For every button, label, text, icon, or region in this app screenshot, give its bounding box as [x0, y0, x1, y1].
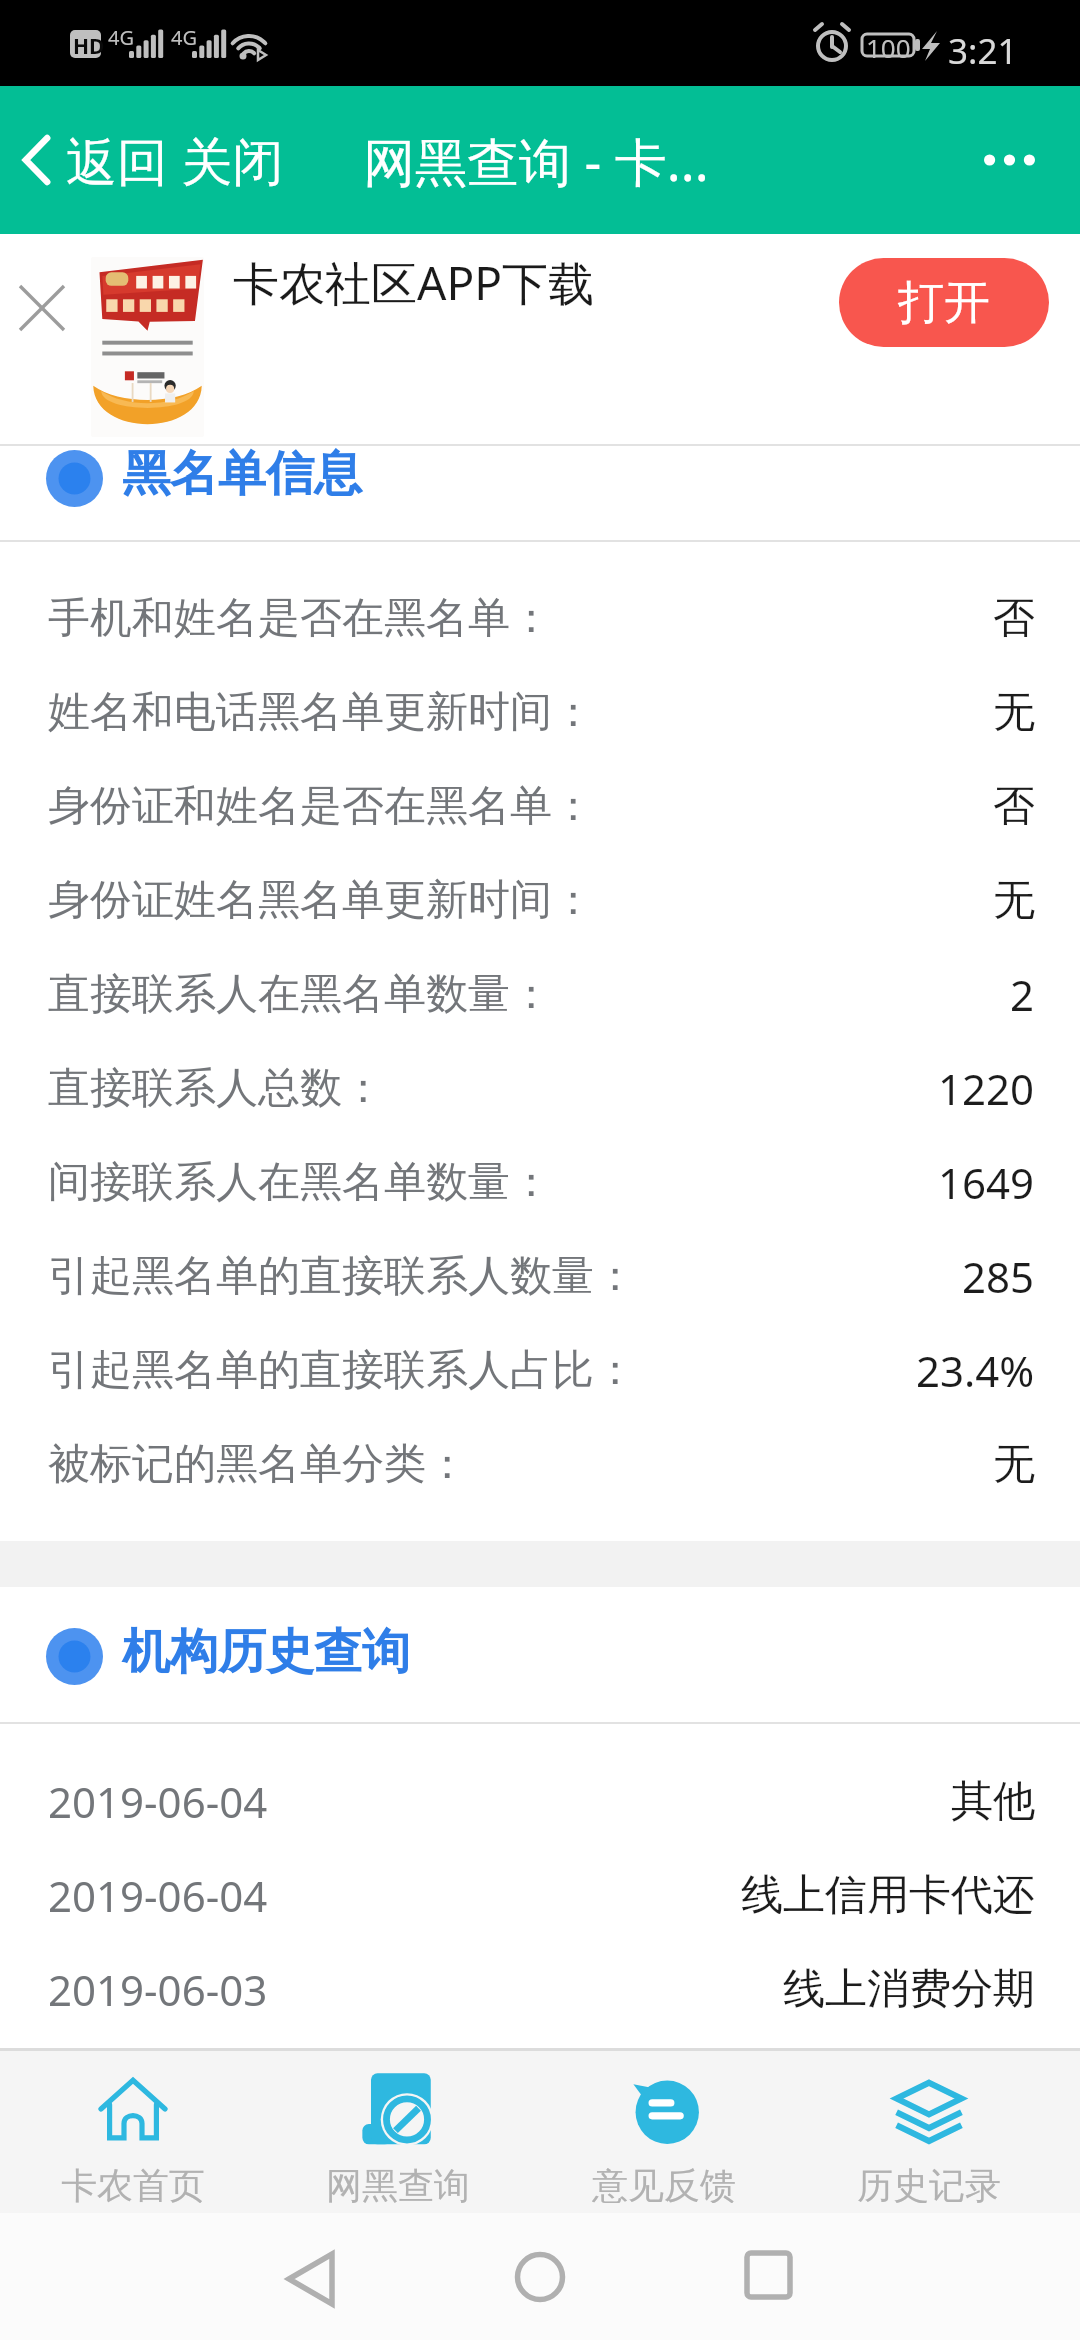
staticText: 23.4% [916, 1342, 1035, 1399]
staticText: 线上信用卡代还 [741, 1869, 1035, 1922]
staticText: 无 [993, 1438, 1035, 1491]
staticText: 2 [1010, 966, 1035, 1023]
button[interactable]: Blacklist query [265, 2051, 530, 2213]
staticText: 285 [962, 1248, 1035, 1305]
button[interactable]: 身份证和姓名是否在黑名单： [0, 759, 1080, 853]
button[interactable]: Close ad [10, 276, 74, 340]
staticText: 2019-06-04 [48, 1773, 268, 1830]
staticText: 2019-06-04 [48, 1867, 268, 1924]
staticText: 4G [171, 24, 197, 51]
staticText: 4G [108, 24, 134, 51]
button[interactable]: 机构历史查询 [0, 1626, 1080, 1686]
staticText: HD [73, 32, 105, 61]
button[interactable]: Recent apps [707, 2227, 827, 2327]
button[interactable]: 打开 [839, 258, 1049, 347]
staticText: 引起黑名单的直接联系人占比： [48, 1344, 636, 1397]
staticText: 无 [993, 686, 1035, 739]
staticText: 网黑查询 - 卡... [363, 125, 709, 196]
button[interactable]: Home [0, 2051, 265, 2213]
button[interactable]: 直接联系人总数： [0, 1041, 1080, 1135]
button[interactable]: 手机和姓名是否在黑名单： [0, 571, 1080, 665]
staticText: 1220 [938, 1060, 1035, 1117]
button[interactable]: More options [948, 114, 1071, 206]
staticText: 打开 [898, 274, 990, 332]
staticText: 直接联系人在黑名单数量： [48, 968, 552, 1021]
staticText: 身份证姓名黑名单更新时间： [48, 874, 594, 927]
button[interactable]: 姓名和电话黑名单更新时间： [0, 665, 1080, 759]
button[interactable]: 直接联系人在黑名单数量： [0, 947, 1080, 1041]
button[interactable]: Back [248, 2227, 368, 2327]
staticText: 100 [866, 30, 911, 65]
staticText: 黑名单信息 [122, 444, 362, 504]
staticText: 意见反馈 [592, 2163, 736, 2203]
button[interactable]: 黑名单信息 [0, 448, 1080, 508]
button[interactable]: 间接联系人在黑名单数量： [0, 1135, 1080, 1229]
button[interactable]: 身份证姓名黑名单更新时间： [0, 853, 1080, 947]
staticText: 引起黑名单的直接联系人数量： [48, 1250, 636, 1303]
button[interactable]: History [796, 2051, 1061, 2213]
staticText: 身份证和姓名是否在黑名单： [48, 780, 594, 833]
staticText: 线上消费分期 [783, 1963, 1035, 2016]
staticText: 2019-06-03 [48, 1961, 268, 2018]
button[interactable]: 引起黑名单的直接联系人占比： [0, 1323, 1080, 1417]
staticText: 姓名和电话黑名单更新时间： [48, 686, 594, 739]
staticText: 无 [993, 874, 1035, 927]
button[interactable]: 2019-06-04 [0, 1848, 1080, 1942]
staticText: 返回 关闭 [66, 125, 284, 195]
button[interactable]: 返回 关闭 [0, 95, 294, 225]
button[interactable]: 被标记的黑名单分类： [0, 1417, 1080, 1511]
button[interactable]: 2019-06-03 [0, 1942, 1080, 2036]
staticText: 网黑查询 [326, 2163, 470, 2203]
staticText: 否 [993, 592, 1035, 645]
staticText: 直接联系人总数： [48, 1062, 384, 1115]
button[interactable]: Home [480, 2227, 600, 2327]
staticText: 卡农社区APP下载 [233, 251, 595, 314]
button[interactable]: 引起黑名单的直接联系人数量： [0, 1229, 1080, 1323]
staticText: 1649 [938, 1154, 1035, 1211]
button[interactable]: 2019-06-04 [0, 1754, 1080, 1848]
staticText: 手机和姓名是否在黑名单： [48, 592, 552, 645]
button[interactable]: Feedback [531, 2051, 796, 2213]
staticText: 其他 [951, 1775, 1035, 1828]
staticText: 3:21 [948, 27, 1018, 75]
staticText: 否 [993, 780, 1035, 833]
staticText: 卡农首页 [61, 2163, 205, 2203]
staticText: 间接联系人在黑名单数量： [48, 1156, 552, 1209]
staticText: 机构历史查询 [122, 1622, 410, 1682]
staticText: 被标记的黑名单分类： [48, 1438, 468, 1491]
staticText: 历史记录 [857, 2163, 1001, 2203]
